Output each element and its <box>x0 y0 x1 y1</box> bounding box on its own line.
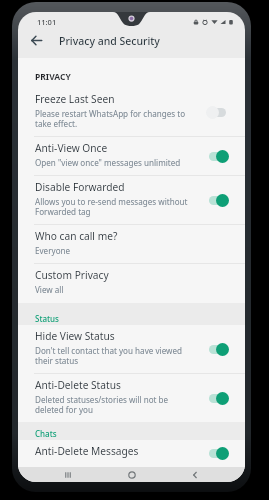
button[interactable]: Freeze Last Seen <box>18 88 245 136</box>
button[interactable]: Disable Forwarded <box>18 176 245 224</box>
button[interactable]: Toggle on <box>206 194 229 207</box>
staticText: Disable Forwarded <box>35 180 125 194</box>
staticText: PRIVACY <box>35 71 71 83</box>
button[interactable]: Toggle off <box>206 106 229 119</box>
button[interactable]: Anti-Delete Messages <box>18 440 245 467</box>
staticText: Don't tell contact that you have viewed … <box>35 345 182 366</box>
staticText: Anti-View Once <box>35 141 108 155</box>
button[interactable]: Anti-Delete Status <box>18 374 245 422</box>
staticText: 11:01 <box>37 17 57 27</box>
button[interactable]: Hide View Status <box>18 325 245 373</box>
button[interactable]: Recents <box>58 467 78 482</box>
staticText: Deleted statuses/stories will not be del… <box>35 394 169 415</box>
staticText: View all <box>35 284 64 295</box>
staticText: Hide View Status <box>35 329 115 343</box>
button[interactable]: Custom Privacy <box>18 264 245 302</box>
staticText: Allows you to re-send messages without F… <box>35 196 188 217</box>
button[interactable]: Back <box>185 467 205 482</box>
button[interactable]: Back <box>27 31 46 50</box>
button[interactable]: Who can call me? <box>18 225 245 263</box>
staticText: Freeze Last Seen <box>35 92 115 106</box>
staticText: Chats <box>35 428 57 439</box>
staticText: Who can call me? <box>35 229 118 243</box>
button[interactable]: Toggle on <box>206 447 229 460</box>
staticText: Open "view once" messages unlimited <box>35 157 181 168</box>
staticText: Please restart WhatsApp for changes to t… <box>35 108 186 129</box>
staticText: Anti-Delete Status <box>35 378 121 392</box>
staticText: Privacy and Security <box>59 34 160 48</box>
button[interactable]: Home <box>122 467 142 482</box>
staticText: Status <box>35 313 60 324</box>
button[interactable]: Toggle on <box>206 150 229 163</box>
staticText: Everyone <box>35 245 71 256</box>
button[interactable]: Toggle on <box>206 343 229 356</box>
staticText: Custom Privacy <box>35 268 109 282</box>
button[interactable]: Toggle on <box>206 392 229 405</box>
button[interactable]: Anti-View Once <box>18 137 245 175</box>
staticText: Anti-Delete Messages <box>35 444 139 458</box>
